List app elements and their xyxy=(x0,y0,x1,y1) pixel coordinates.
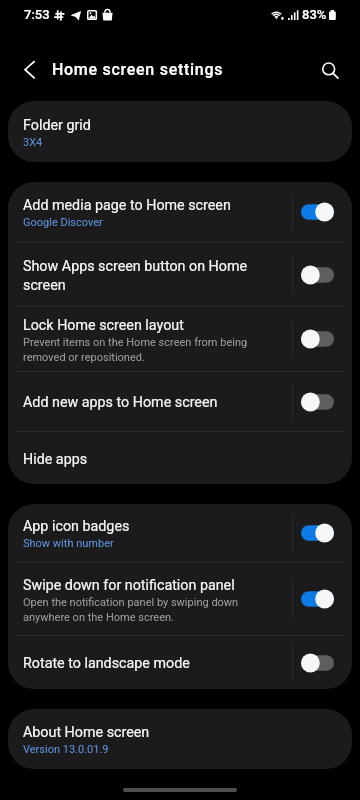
button[interactable]: Switch on xyxy=(293,513,352,553)
staticText: Home screen settings xyxy=(52,60,224,79)
button[interactable]: Lock Home screen layout xyxy=(8,307,352,371)
staticText: Rotate to landscape mode xyxy=(23,653,190,672)
button[interactable]: Swipe down for notification panel xyxy=(8,563,352,635)
staticText: Lock Home screen layout xyxy=(23,315,184,334)
staticText: 7:53 xyxy=(24,7,50,22)
button[interactable]: Switch on xyxy=(293,192,352,232)
button[interactable]: Rotate to landscape mode xyxy=(8,636,352,689)
staticText: App icon badges xyxy=(23,516,130,535)
button[interactable]: Switch off xyxy=(293,255,352,295)
staticText: About Home screen xyxy=(23,722,150,741)
staticText: 3X4 xyxy=(23,134,43,149)
button[interactable]: Search xyxy=(311,46,347,82)
button[interactable]: Switch on xyxy=(293,579,352,619)
button[interactable]: App icon badges xyxy=(8,504,352,562)
staticText: Hide apps xyxy=(23,449,88,468)
staticText: Add new apps to Home screen xyxy=(23,392,218,411)
staticText: Add media page to Home screen xyxy=(23,195,231,214)
staticText: Version 13.0.01.9 xyxy=(23,741,109,756)
button[interactable]: Show Apps screen button on Home screen xyxy=(8,243,352,306)
staticText: Show with number xyxy=(23,535,114,550)
button[interactable]: Navigate up xyxy=(11,46,47,82)
button[interactable]: Add new apps to Home screen xyxy=(8,372,352,431)
staticText: Folder grid xyxy=(23,115,91,134)
staticText: Swipe down for notification panel xyxy=(23,575,235,594)
button[interactable]: About Home screen xyxy=(8,709,352,769)
button[interactable]: Folder grid xyxy=(8,101,352,162)
button[interactable]: Switch off xyxy=(293,643,352,683)
staticText: Prevent items on the Home screen from be… xyxy=(23,334,284,364)
staticText: 83% xyxy=(302,7,327,22)
button[interactable]: Add media page to Home screen xyxy=(8,182,352,242)
staticText: Google Discover xyxy=(23,214,103,229)
staticText: Open the notification panel by swiping d… xyxy=(23,594,284,624)
staticText: Show Apps screen button on Home screen xyxy=(23,256,284,294)
button[interactable]: Switch off xyxy=(293,319,352,359)
button[interactable]: Hide apps xyxy=(8,432,352,484)
button[interactable]: Switch off xyxy=(293,382,352,422)
